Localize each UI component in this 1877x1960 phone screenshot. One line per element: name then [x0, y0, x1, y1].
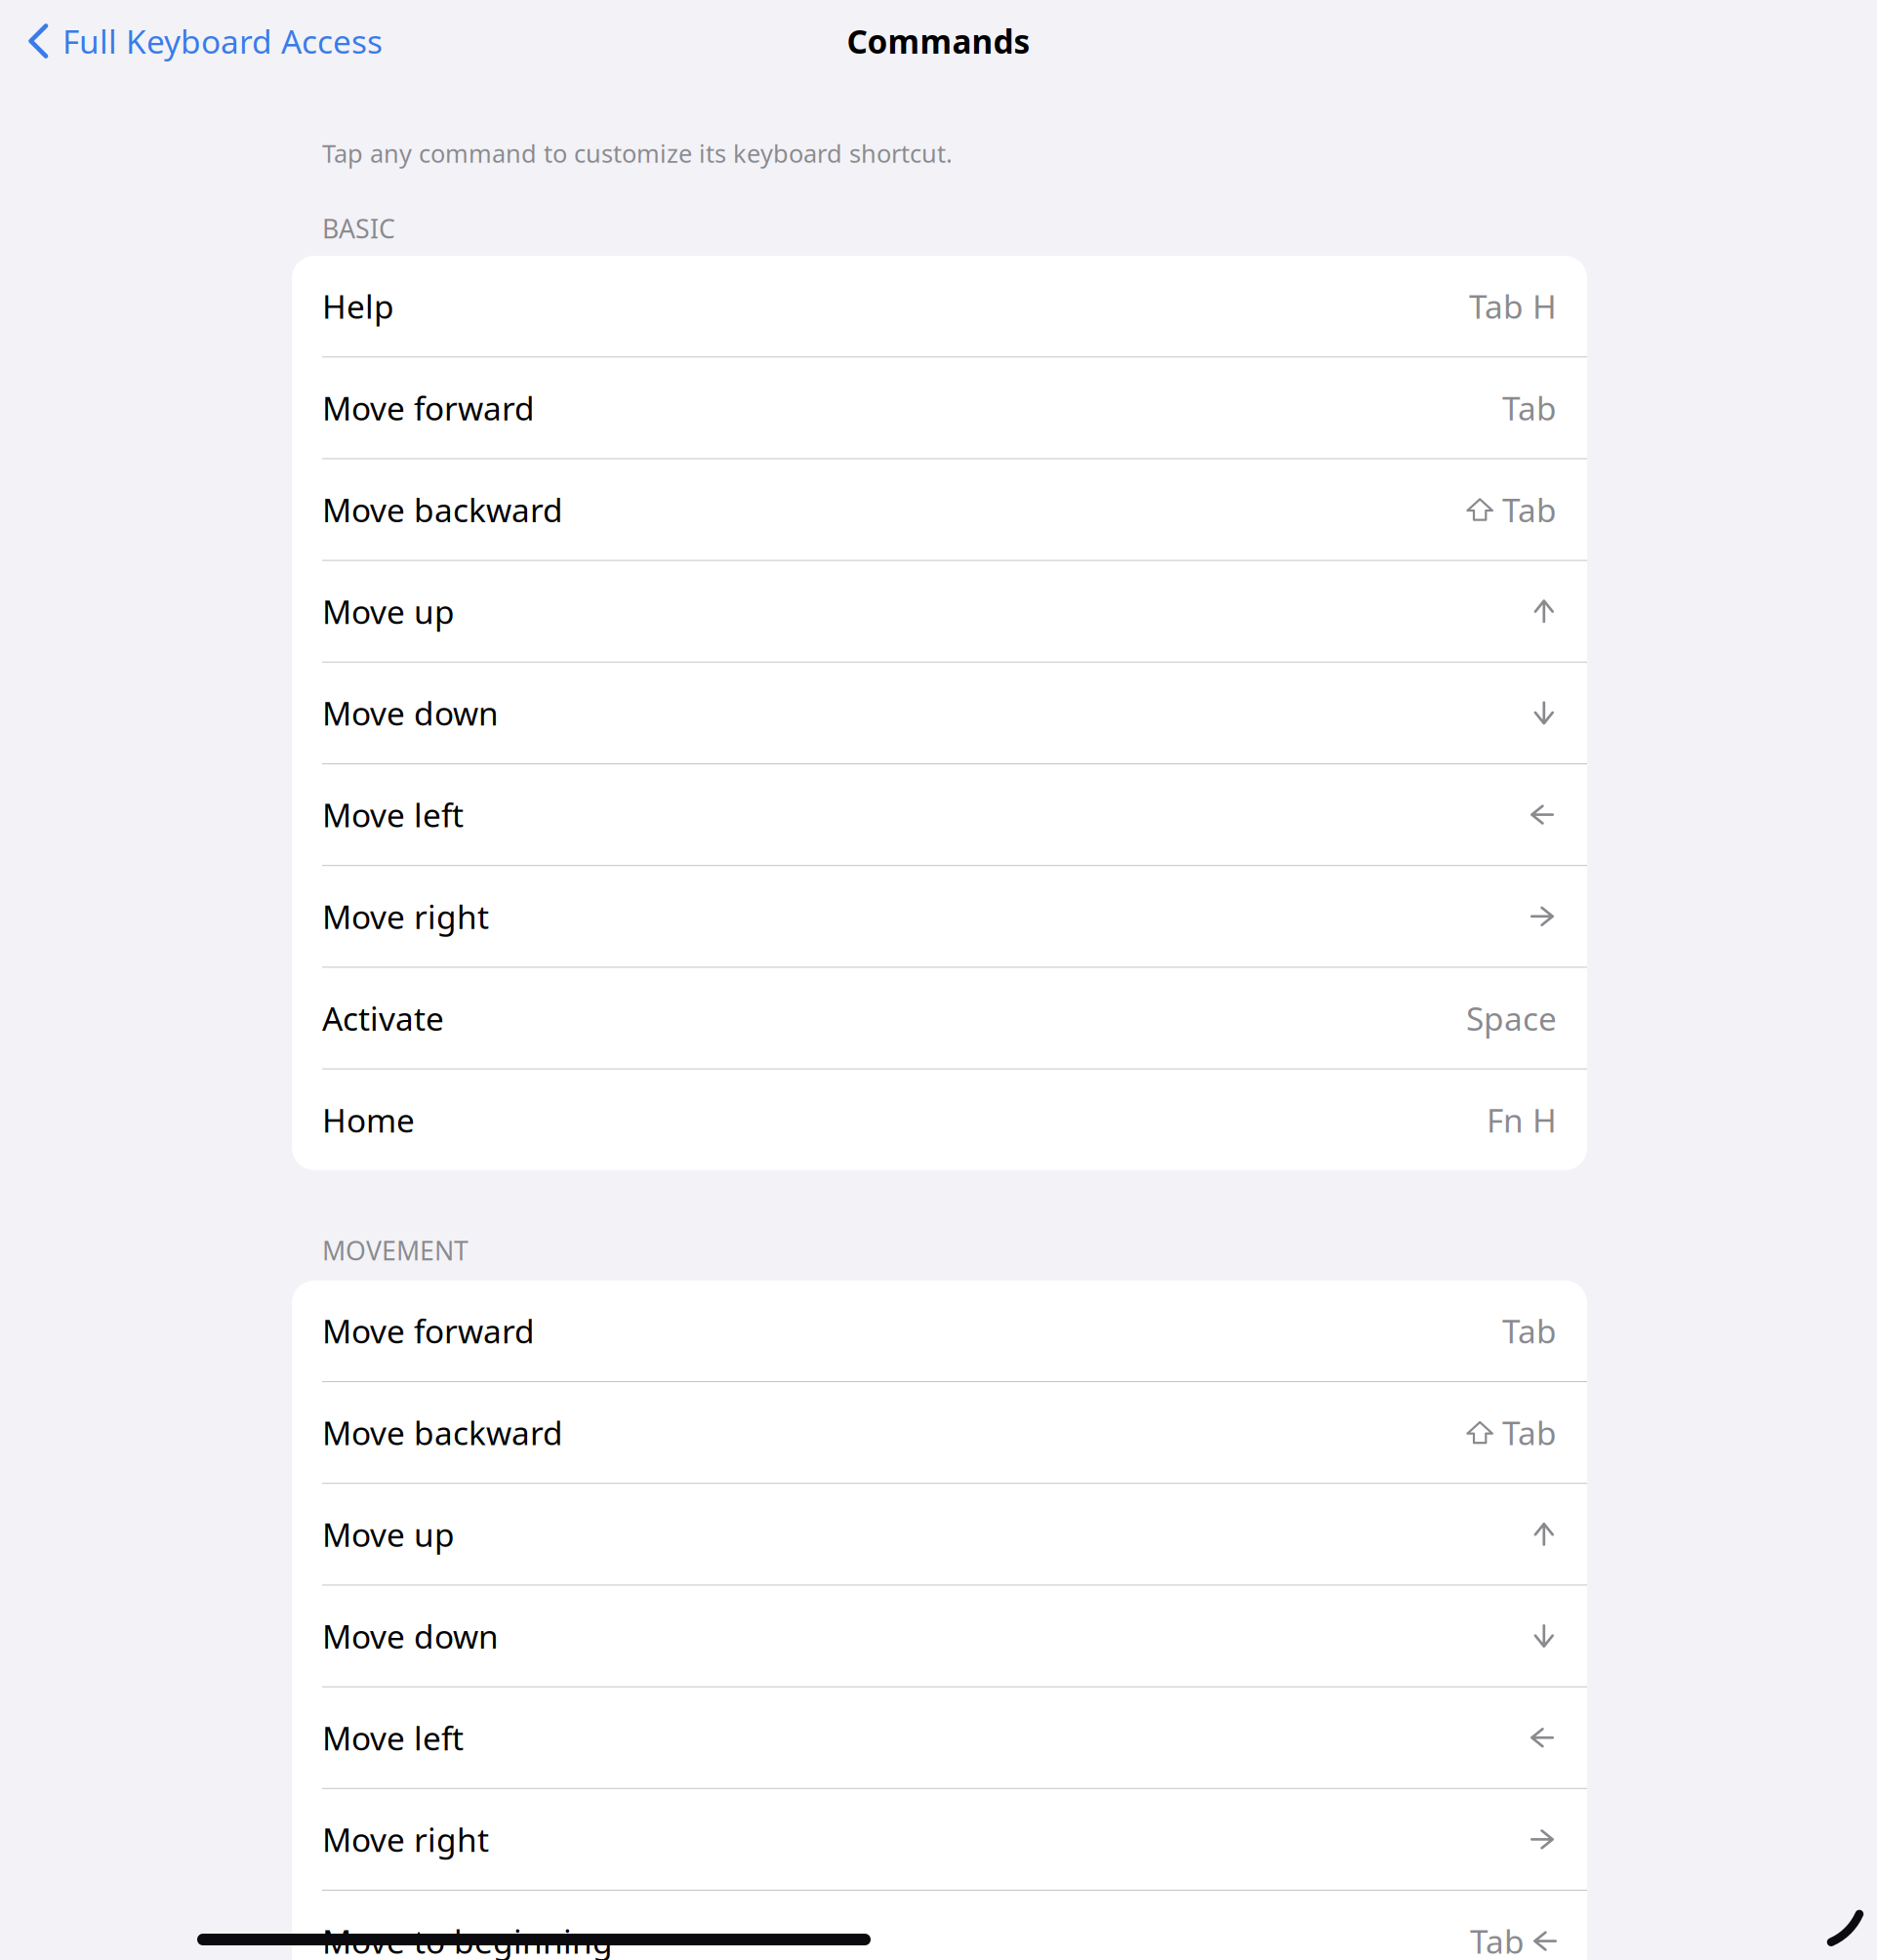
staticText: Move right: [322, 1818, 489, 1861]
button[interactable]: Activate: [292, 968, 1587, 1068]
staticText: Tab: [1502, 488, 1557, 531]
staticText: Move down: [322, 691, 499, 735]
button[interactable]: Move down: [292, 663, 1587, 763]
staticText: Help: [322, 285, 394, 328]
button[interactable]: Move left: [292, 764, 1587, 865]
staticText: Tap any command to customize its keyboar…: [322, 137, 953, 170]
staticText: Move right: [322, 895, 489, 938]
staticText: Move down: [322, 1614, 499, 1658]
staticText: Move left: [322, 793, 464, 836]
staticText: MOVEMENT: [322, 1233, 469, 1267]
staticText: Tab: [1502, 1411, 1557, 1454]
staticText: Move backward: [322, 488, 563, 531]
staticText: Move forward: [322, 1309, 535, 1352]
scrollView: [0, 0, 1877, 1960]
staticText: Space: [1466, 996, 1557, 1040]
button[interactable]: Home: [292, 1069, 1587, 1170]
button[interactable]: Move forward: [292, 357, 1587, 458]
button[interactable]: Move backward: [292, 1382, 1587, 1483]
staticText: BASIC: [322, 211, 395, 246]
button[interactable]: Move up: [292, 561, 1587, 662]
button[interactable]: Move backward: [292, 459, 1587, 560]
button[interactable]: Move right: [292, 1789, 1587, 1890]
button[interactable]: Move right: [292, 866, 1587, 967]
staticText: Move forward: [322, 386, 535, 429]
staticText: Fn H: [1487, 1098, 1557, 1141]
staticText: Tab: [1502, 1309, 1557, 1352]
staticText: Commands: [847, 19, 1030, 63]
staticText: Move left: [322, 1716, 464, 1759]
staticText: Full Keyboard Access: [62, 19, 383, 63]
staticText: Home: [322, 1098, 415, 1141]
staticText: Tab: [1502, 386, 1557, 429]
button[interactable]: Help: [292, 256, 1587, 356]
staticText: Move backward: [322, 1411, 563, 1454]
button[interactable]: Move down: [292, 1586, 1587, 1686]
navigationBar: Commands: [0, 0, 1877, 82]
staticText: Activate: [322, 996, 444, 1040]
button[interactable]: Move left: [292, 1687, 1587, 1788]
button[interactable]: Move up: [292, 1484, 1587, 1585]
staticText: Tab H: [1469, 285, 1557, 328]
button[interactable]: Back to Full Keyboard Access: [0, 0, 396, 82]
staticText: Tab: [1470, 1919, 1525, 1960]
staticText: Move up: [322, 590, 455, 633]
button[interactable]: Move forward: [292, 1280, 1587, 1381]
staticText: Move up: [322, 1513, 455, 1556]
button[interactable]: Move to beginning: [292, 1891, 1587, 1960]
staticText: Move to beginning: [322, 1919, 613, 1960]
